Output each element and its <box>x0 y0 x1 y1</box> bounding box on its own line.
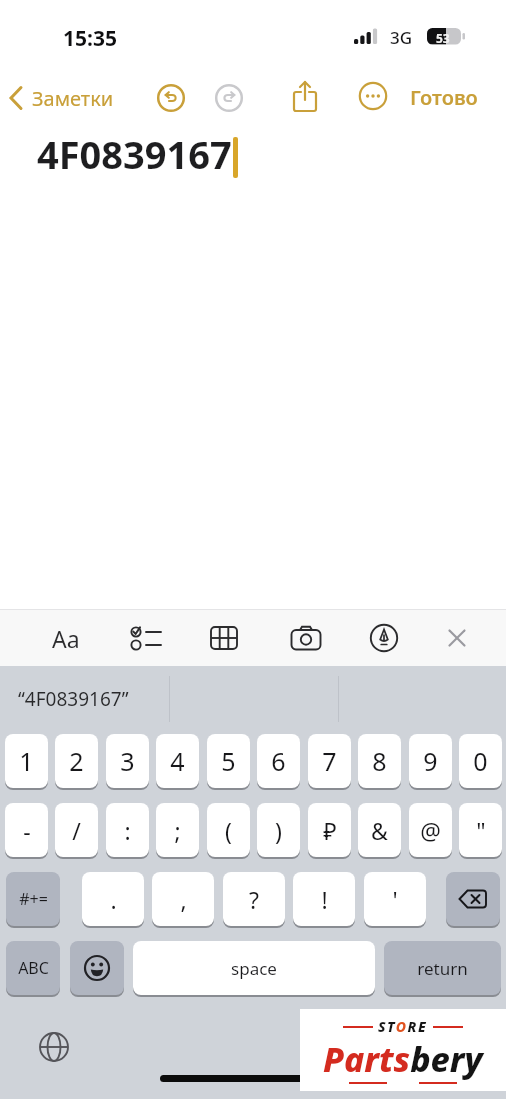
button[interactable] <box>36 1029 72 1065</box>
staticText: @ <box>420 815 441 846</box>
staticText: / <box>72 815 81 846</box>
staticText: return <box>417 957 468 980</box>
staticText: “4F0839167” <box>18 686 129 712</box>
staticText: Заметки <box>32 85 114 112</box>
button[interactable]: 2 <box>55 734 98 788</box>
button[interactable]: Aa <box>38 615 94 661</box>
staticText: #+= <box>19 888 48 910</box>
button[interactable] <box>280 615 332 661</box>
button[interactable] <box>355 78 391 114</box>
button[interactable]: ₽ <box>308 803 351 857</box>
button[interactable]: 7 <box>308 734 351 788</box>
staticText: 4 <box>170 744 185 778</box>
staticText: STORE <box>378 1017 428 1036</box>
button[interactable]: return <box>384 941 501 995</box>
staticText: ₽ <box>323 815 337 846</box>
button[interactable]: 9 <box>409 734 452 788</box>
staticText: ? <box>249 884 259 915</box>
button[interactable]: #+= <box>6 872 60 926</box>
staticText: . <box>110 884 117 915</box>
button[interactable] <box>211 80 247 116</box>
staticText: 8 <box>372 744 387 778</box>
button[interactable] <box>70 941 124 995</box>
staticText: 5 <box>221 744 236 778</box>
staticText: 53 <box>436 30 450 46</box>
button[interactable]: - <box>5 803 48 857</box>
button[interactable]: ; <box>156 803 199 857</box>
button[interactable]: , <box>152 872 214 926</box>
button[interactable] <box>198 615 250 661</box>
button[interactable]: / <box>55 803 98 857</box>
button[interactable]: 1 <box>5 734 48 788</box>
button[interactable]: & <box>358 803 401 857</box>
staticText: 3 <box>120 744 135 778</box>
button[interactable]: @ <box>409 803 452 857</box>
button[interactable]: ? <box>223 872 285 926</box>
button[interactable]: ' <box>364 872 426 926</box>
button[interactable] <box>287 76 323 118</box>
button[interactable]: ABC <box>6 941 60 995</box>
staticText: 15:35 <box>63 24 117 53</box>
staticText: space <box>231 957 277 980</box>
button[interactable]: . <box>82 872 144 926</box>
button[interactable]: 6 <box>257 734 300 788</box>
button[interactable]: 4 <box>156 734 199 788</box>
staticText: 3G <box>390 26 413 49</box>
button[interactable] <box>446 872 500 926</box>
button[interactable] <box>358 615 410 661</box>
staticText: 6 <box>271 744 286 778</box>
button[interactable]: Заметки <box>6 80 136 116</box>
button[interactable]: 3 <box>106 734 149 788</box>
staticText: ABC <box>18 957 49 979</box>
button[interactable]: 0 <box>459 734 502 788</box>
staticText: Partsbery <box>323 1036 483 1082</box>
staticText: - <box>23 815 31 846</box>
staticText: 1 <box>19 744 34 778</box>
button[interactable] <box>120 615 172 661</box>
staticText: 4F0839167 <box>37 128 232 180</box>
staticText: ( <box>225 815 232 846</box>
staticText: 9 <box>423 744 438 778</box>
staticText: 2 <box>69 744 84 778</box>
staticText: , <box>180 884 187 915</box>
staticText: 7 <box>322 744 337 778</box>
button[interactable] <box>0 666 169 733</box>
staticText: " <box>476 815 486 846</box>
button[interactable]: 5 <box>207 734 250 788</box>
staticText: & <box>371 815 388 846</box>
staticText: ; <box>174 815 181 846</box>
button[interactable]: 8 <box>358 734 401 788</box>
staticText: ' <box>392 884 398 915</box>
button[interactable] <box>153 80 189 116</box>
button[interactable]: space <box>133 941 375 995</box>
button[interactable]: ) <box>257 803 300 857</box>
button[interactable]: " <box>459 803 502 857</box>
staticText: 0 <box>473 744 488 778</box>
staticText: Aa <box>52 623 80 654</box>
button[interactable]: ( <box>207 803 250 857</box>
staticText: : <box>124 815 131 846</box>
button[interactable]: ! <box>293 872 355 926</box>
button[interactable]: : <box>106 803 149 857</box>
button[interactable] <box>434 615 480 661</box>
staticText: ) <box>275 815 282 846</box>
staticText: ! <box>321 884 328 915</box>
